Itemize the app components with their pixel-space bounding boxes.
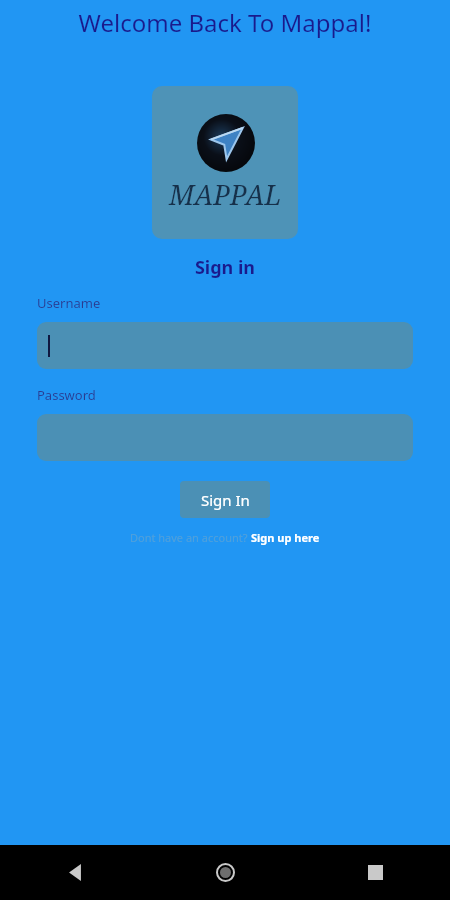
button[interactable]: Username input: [37, 322, 413, 369]
button[interactable]: Sign up here: [251, 530, 320, 545]
staticText: Username: [37, 294, 101, 312]
staticText: Sign up here: [251, 530, 320, 545]
staticText: Sign in: [0, 255, 450, 280]
button[interactable]: Recent apps: [300, 845, 450, 900]
button[interactable]: Home: [150, 845, 300, 900]
button[interactable]: Sign In: [180, 481, 270, 518]
staticText: Dont have an account?: [130, 530, 251, 545]
staticText: MAPPAL: [169, 176, 282, 213]
staticText: Welcome Back To Mappal!: [0, 6, 450, 39]
button[interactable]: Password input: [37, 414, 413, 461]
button[interactable]: Back: [0, 845, 150, 900]
button[interactable]: MAPPAL: [152, 86, 298, 239]
staticText: Password: [37, 386, 96, 404]
staticText: Sign In: [201, 490, 250, 510]
